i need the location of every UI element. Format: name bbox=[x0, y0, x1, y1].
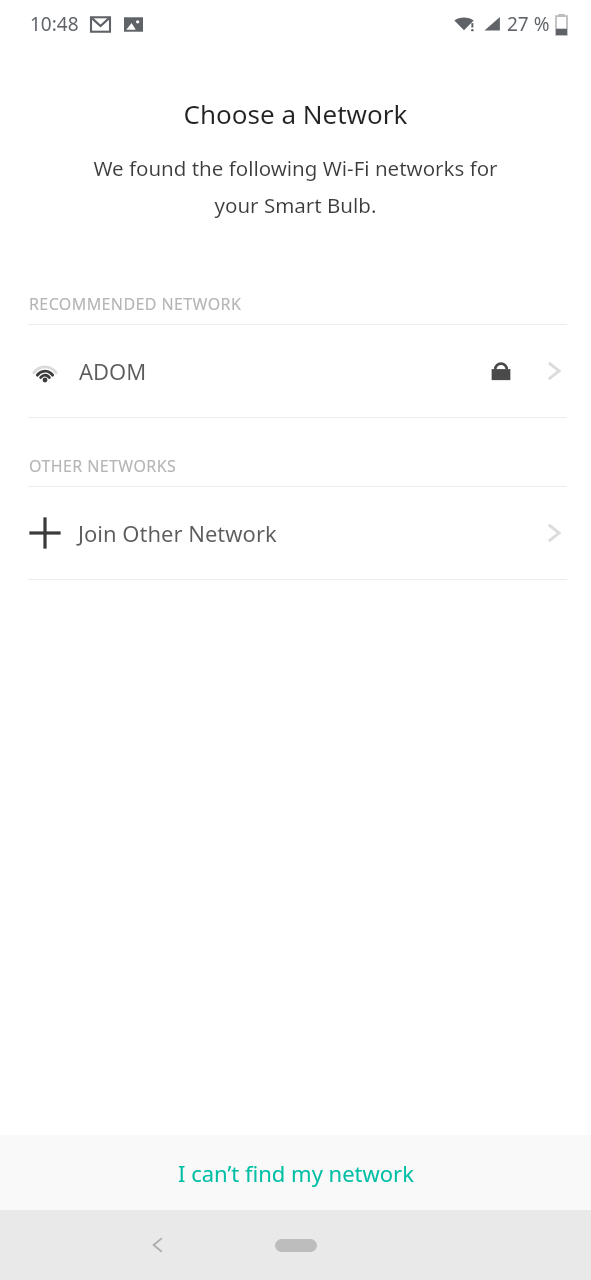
staticText: 27 % bbox=[507, 11, 550, 37]
button[interactable]: Home bbox=[275, 1239, 317, 1252]
button[interactable]: ADOM bbox=[0, 325, 591, 417]
staticText: Choose a Network bbox=[0, 96, 591, 131]
button[interactable]: Join Other Network bbox=[0, 487, 591, 579]
other: Secured network bbox=[489, 359, 513, 383]
staticText: Join Other Network bbox=[78, 518, 277, 548]
button[interactable]: I can’t find my network bbox=[0, 1135, 591, 1210]
staticText: 10:48 bbox=[30, 11, 79, 37]
staticText: RECOMMENDED NETWORK bbox=[29, 293, 242, 315]
staticText: OTHER NETWORKS bbox=[29, 455, 177, 477]
staticText: ADOM bbox=[79, 356, 147, 386]
staticText: I can’t find my network bbox=[178, 1158, 414, 1188]
button[interactable]: Back bbox=[138, 1225, 178, 1265]
staticText: We found the following Wi-Fi networks fo… bbox=[70, 154, 521, 219]
